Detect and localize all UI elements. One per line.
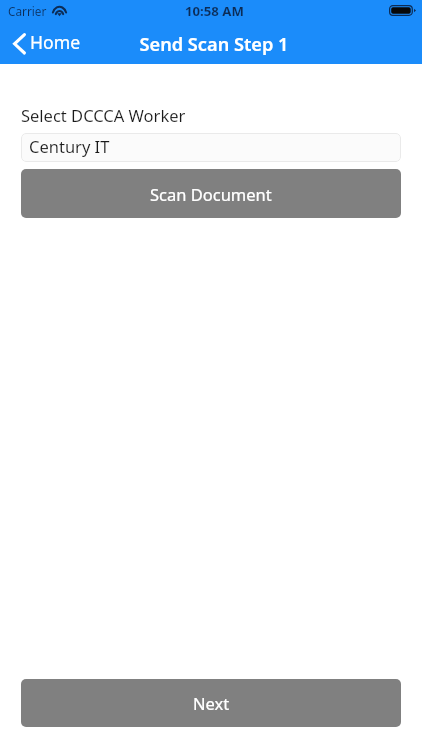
staticText: Select DCCCA Worker xyxy=(21,104,186,126)
staticText: Scan Document xyxy=(150,183,272,205)
staticText: 10:58 AM xyxy=(185,2,244,20)
staticText: Home xyxy=(30,30,81,54)
button[interactable]: Scan Document xyxy=(21,169,401,218)
button[interactable]: Next xyxy=(21,679,401,727)
button[interactable]: Back to Home xyxy=(13,30,81,54)
staticText: Send Scan Step 1 xyxy=(139,32,289,57)
button[interactable]: Century IT xyxy=(21,133,401,162)
staticText: Century IT xyxy=(29,135,110,157)
staticText: Next xyxy=(193,692,230,714)
staticText: Carrier xyxy=(8,3,47,19)
